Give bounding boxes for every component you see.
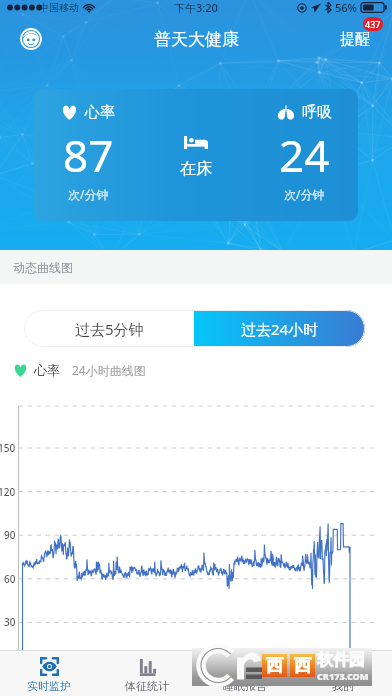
staticText: 实时监护 [27, 679, 71, 693]
staticText: 在床 [180, 159, 212, 179]
staticText: 60 [4, 572, 16, 586]
staticText: 心率 [34, 362, 60, 378]
button[interactable]: Profile [294, 654, 392, 693]
staticText: 西 [266, 655, 283, 676]
staticText: 437 [365, 18, 381, 30]
button[interactable]: Live monitoring [0, 654, 98, 693]
staticText: 呼吸 [302, 103, 332, 122]
staticText: 睡眠报告 [223, 679, 267, 693]
staticText: CR173.COM [317, 670, 369, 682]
staticText: 西 [294, 655, 311, 676]
staticText: 87 [63, 125, 114, 185]
staticText: 24 [279, 125, 330, 185]
staticText: 24小时曲线图 [72, 362, 146, 378]
staticText: 提醒 [340, 30, 370, 49]
staticText: 下午3:20 [174, 0, 218, 15]
staticText: 90 [4, 528, 16, 542]
button[interactable]: Profile [17, 25, 45, 53]
staticText: 动态曲线图 [13, 260, 73, 275]
staticText: 软件园 [317, 650, 365, 670]
staticText: 中国移动 [39, 1, 79, 14]
staticText: 次/分钟 [68, 186, 109, 202]
staticText: 过去5分钟 [75, 319, 144, 339]
staticText: 普天大健康 [154, 29, 239, 50]
staticText: 56% [335, 0, 357, 15]
button[interactable]: Statistics [98, 654, 196, 693]
staticText: 次/分钟 [284, 186, 325, 202]
staticText: 我的 [332, 679, 354, 693]
staticText: 120 [0, 485, 16, 499]
staticText: 体征统计 [125, 679, 169, 693]
button[interactable]: 过去5分钟 [24, 310, 194, 347]
button[interactable]: Sleep report [196, 654, 294, 693]
button[interactable]: 过去24小时 [194, 310, 365, 347]
staticText: 30 [4, 615, 16, 629]
button[interactable]: 提醒 [326, 23, 392, 56]
staticText: 过去24小时 [241, 319, 319, 339]
staticText: 150 [0, 441, 16, 455]
button[interactable]: 心率 [34, 89, 358, 221]
staticText: 心率 [85, 103, 115, 122]
